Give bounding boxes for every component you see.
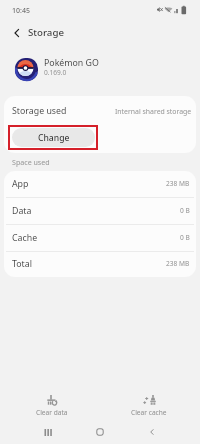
- staticText: 238 MB: [166, 179, 190, 188]
- staticText: Pokémon GO: [44, 57, 99, 69]
- button[interactable]: Clear data: [6, 386, 98, 418]
- staticText: 0 B: [180, 206, 190, 215]
- button[interactable]: Change: [12, 128, 95, 147]
- button[interactable]: Total: [4, 252, 196, 277]
- button[interactable]: Cache: [4, 225, 196, 252]
- staticText: Storage used: [12, 105, 67, 117]
- staticText: 10:45: [12, 6, 30, 16]
- button[interactable]: Clear cache: [103, 386, 195, 418]
- staticText: Clear data: [36, 408, 68, 417]
- staticText: Space used: [12, 157, 50, 167]
- staticText: Internal shared storage: [115, 107, 192, 116]
- staticText: 238 MB: [166, 259, 190, 268]
- button[interactable]: Home: [83, 420, 116, 444]
- staticText: Storage: [28, 26, 64, 39]
- staticText: Data: [12, 205, 32, 217]
- button[interactable]: Back: [135, 420, 168, 444]
- button[interactable]: Data: [4, 198, 196, 225]
- staticText: 0 B: [180, 233, 190, 242]
- staticText: Change: [38, 132, 70, 144]
- staticText: App: [12, 178, 29, 190]
- staticText: Clear cache: [131, 408, 167, 417]
- staticText: Total: [12, 258, 32, 270]
- staticText: Cache: [12, 232, 38, 244]
- button[interactable]: Back: [6, 22, 28, 44]
- button[interactable]: App: [4, 171, 196, 198]
- button[interactable]: Recents: [31, 420, 64, 444]
- staticText: 0.169.0: [44, 68, 67, 77]
